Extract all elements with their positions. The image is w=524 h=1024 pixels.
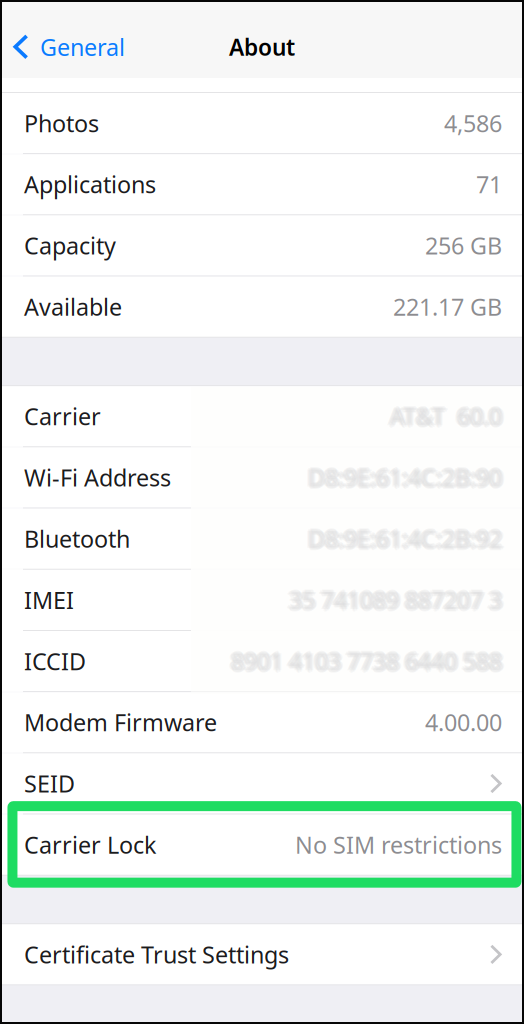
staticText: D8:9E:61:4C:2B:90 (309, 460, 503, 492)
staticText: Available (24, 291, 122, 323)
staticText: D8:9E:61:4C:2B:90 (307, 463, 501, 495)
staticText: AT&T 60.0 (390, 398, 502, 430)
staticText: AT&T 60.0 (387, 400, 499, 432)
button[interactable]: Carrier (0, 386, 524, 446)
button[interactable]: Carrier Lock (0, 815, 524, 875)
staticText: 4,586 (444, 107, 502, 139)
staticText: D8:9E:61:4C:2B:92 (309, 523, 503, 555)
staticText: D8:9E:61:4C:2B:92 (307, 524, 501, 556)
staticText: AT&T 60.0 (388, 399, 500, 431)
staticText: 8901 4103 7738 6440 588 (234, 645, 505, 677)
staticText: D8:9E:61:4C:2B:90 (306, 460, 500, 492)
button[interactable]: Modem Firmware (0, 692, 524, 752)
staticText: 8901 4103 7738 6440 588 (229, 645, 500, 677)
staticText: Wi-Fi Address (24, 462, 171, 493)
staticText: 71 (476, 168, 502, 200)
staticText: 256 GB (425, 230, 502, 261)
button[interactable]: Photos (0, 93, 524, 153)
staticText: Carrier Lock (24, 829, 156, 861)
staticText: D8:9E:61:4C:2B:92 (305, 523, 499, 555)
staticText: D8:9E:61:4C:2B:92 (306, 521, 500, 553)
staticText: No SIM restrictions (295, 829, 502, 861)
staticText: Carrier (24, 400, 101, 432)
staticText: Certificate Trust Settings (24, 938, 289, 970)
staticText: 35 741089 887207 3 (289, 586, 502, 618)
staticText: 4.00.00 (425, 706, 502, 738)
button[interactable]: SEID (0, 753, 524, 814)
staticText: 8901 4103 7738 6440 588 (231, 643, 502, 674)
staticText: AT&T 60.0 (390, 400, 502, 432)
staticText: AT&T 60.0 (392, 402, 504, 434)
staticText: 35 741089 887207 3 (290, 584, 503, 616)
staticText: 35 741089 887207 3 (291, 585, 504, 617)
staticText: 35 741089 887207 3 (292, 584, 505, 616)
staticText: D8:9E:61:4C:2B:92 (309, 521, 503, 553)
staticText: 35 741089 887207 3 (286, 584, 499, 616)
staticText: Applications (24, 168, 156, 200)
staticText: 8901 4103 7738 6440 588 (232, 645, 503, 677)
staticText: AT&T 60.0 (388, 400, 500, 432)
button[interactable]: Applications (0, 154, 524, 214)
staticText: D8:9E:61:4C:2B:90 (308, 464, 502, 496)
button[interactable]: Wi-Fi Address (0, 447, 524, 508)
staticText: D8:9E:61:4C:2B:92 (308, 525, 502, 557)
button[interactable]: Capacity (0, 215, 524, 276)
staticText: 8901 4103 7738 6440 588 (231, 645, 502, 677)
staticText: 35 741089 887207 3 (288, 585, 501, 617)
staticText: 8901 4103 7738 6440 588 (233, 647, 504, 678)
staticText: D8:9E:61:4C:2B:90 (308, 459, 502, 491)
button[interactable]: Available (0, 277, 524, 337)
button[interactable]: Bluetooth (0, 509, 524, 569)
staticText: AT&T 60.0 (393, 400, 505, 432)
staticText: 35 741089 887207 3 (290, 582, 503, 614)
staticText: Bluetooth (24, 523, 130, 555)
staticText: ICCID (24, 645, 86, 677)
staticText: AT&T 60.0 (391, 399, 503, 431)
staticText: IMEI (24, 584, 74, 616)
button[interactable]: IMEI (0, 570, 524, 630)
staticText: 35 741089 887207 3 (287, 582, 500, 614)
staticText: 8901 4103 7738 6440 588 (230, 647, 501, 678)
staticText: 35 741089 887207 3 (289, 581, 502, 613)
staticText: D8:9E:61:4C:2B:90 (309, 462, 503, 493)
staticText: D8:9E:61:4C:2B:92 (311, 523, 505, 555)
staticText: D8:9E:61:4C:2B:92 (306, 523, 500, 555)
staticText: D8:9E:61:4C:2B:90 (310, 463, 504, 495)
staticText: D8:9E:61:4C:2B:92 (308, 523, 502, 555)
staticText: Photos (24, 107, 99, 139)
staticText: 221.17 GB (393, 291, 502, 323)
staticText: AT&T 60.0 (390, 403, 502, 435)
staticText: 8901 4103 7738 6440 588 (231, 648, 502, 679)
staticText: D8:9E:61:4C:2B:90 (308, 462, 502, 493)
staticText: 8901 4103 7738 6440 588 (229, 644, 500, 675)
staticText: AT&T 60.0 (389, 402, 501, 434)
staticText: D8:9E:61:4C:2B:92 (308, 520, 502, 552)
button[interactable]: Certificate Trust Settings (0, 924, 524, 984)
staticText: SEID (24, 768, 75, 799)
staticText: 35 741089 887207 3 (287, 584, 500, 616)
staticText: 8901 4103 7738 6440 588 (232, 644, 503, 675)
staticText: AT&T 60.0 (391, 400, 503, 432)
staticText: D8:9E:61:4C:2B:90 (311, 462, 505, 493)
button[interactable]: ICCID (0, 631, 524, 691)
staticText: D8:9E:61:4C:2B:92 (310, 524, 504, 556)
staticText: General (40, 31, 125, 63)
staticText: Capacity (24, 230, 116, 261)
staticText: Modem Firmware (24, 706, 217, 738)
staticText: D8:9E:61:4C:2B:90 (305, 462, 499, 493)
staticText: About (229, 32, 295, 62)
button[interactable]: General (0, 25, 135, 69)
staticText: D8:9E:61:4C:2B:90 (306, 462, 500, 493)
staticText: 8901 4103 7738 6440 588 (228, 645, 499, 677)
staticText: 35 741089 887207 3 (289, 584, 502, 616)
